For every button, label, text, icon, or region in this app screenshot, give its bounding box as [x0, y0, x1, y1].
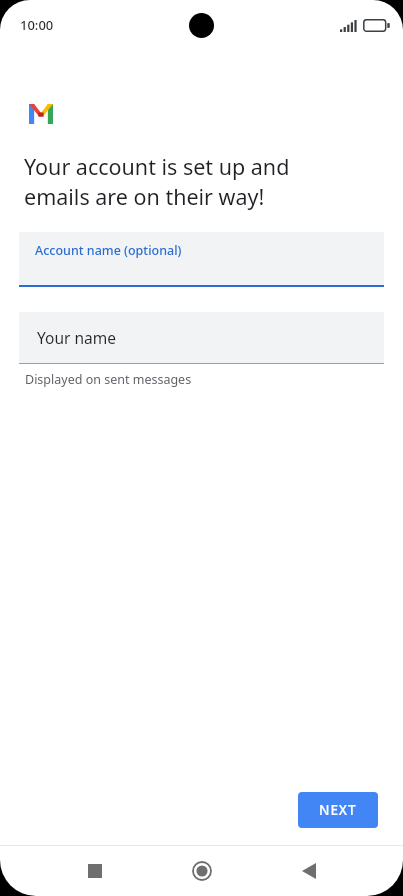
staticText: Account name (optional)	[35, 242, 182, 259]
button[interactable]: Recent apps	[71, 847, 119, 895]
staticText: Your name	[37, 327, 116, 348]
button[interactable]: Back	[285, 847, 333, 895]
button[interactable]: NEXT	[298, 792, 378, 828]
button[interactable]: Home	[178, 847, 226, 895]
staticText: Your account is set up and emails are on…	[24, 152, 290, 211]
staticText: 10:00	[20, 16, 54, 34]
button[interactable]: Account name (optional)	[19, 232, 384, 287]
staticText: Displayed on sent messages	[25, 371, 192, 388]
button[interactable]: Your name	[19, 312, 384, 364]
staticText: NEXT	[319, 801, 357, 819]
